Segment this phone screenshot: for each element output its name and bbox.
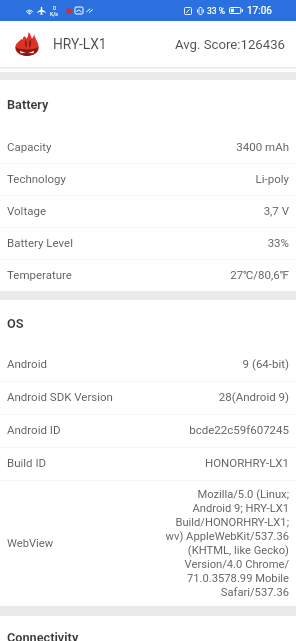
staticText: Temperature bbox=[7, 268, 72, 281]
staticText: Voltage bbox=[7, 204, 46, 217]
staticText: Battery Level bbox=[7, 236, 73, 249]
staticText: bcde22c59f607245 bbox=[189, 423, 289, 436]
staticText: Connectivity bbox=[7, 630, 79, 641]
button[interactable]: Battery Level bbox=[0, 227, 296, 259]
button[interactable]: Capacity bbox=[0, 131, 296, 163]
button[interactable]: Build ID bbox=[0, 447, 296, 480]
button[interactable]: Android SDK Version bbox=[0, 381, 296, 414]
button[interactable]: AnTuTu bbox=[15, 32, 39, 56]
staticText: Battery bbox=[7, 97, 49, 112]
staticText: Android bbox=[7, 357, 47, 370]
staticText: WebView bbox=[7, 537, 54, 550]
button[interactable]: Technology bbox=[0, 163, 296, 195]
staticText: Build ID bbox=[7, 456, 47, 469]
staticText: 28(Android 9) bbox=[218, 390, 289, 403]
staticText: HONORHRY-LX1 bbox=[205, 456, 289, 469]
staticText: Android ID bbox=[7, 423, 61, 436]
staticText: 33 % bbox=[207, 6, 225, 16]
button[interactable]: WebView bbox=[0, 480, 296, 606]
staticText: K/s bbox=[50, 11, 58, 17]
staticText: Mozilla/5.0 (Linux; Android 9; HRY-LX1 B… bbox=[161, 488, 289, 599]
button[interactable]: Android ID bbox=[0, 414, 296, 447]
staticText: 17:06 bbox=[247, 5, 272, 17]
staticText: Android SDK Version bbox=[7, 390, 113, 403]
staticText: 9 (64-bit) bbox=[242, 357, 289, 370]
staticText: 27℃/80,6℉ bbox=[230, 268, 289, 281]
staticText: 33% bbox=[267, 236, 289, 249]
staticText: Avg. Score:126436 bbox=[175, 37, 285, 52]
button[interactable]: Android bbox=[0, 348, 296, 381]
staticText: 3,7 V bbox=[263, 204, 289, 217]
staticText: 0 bbox=[53, 5, 56, 11]
staticText: Technology bbox=[7, 172, 66, 185]
staticText: Capacity bbox=[7, 140, 52, 153]
staticText: 3400 mAh bbox=[236, 140, 289, 153]
staticText: HRY-LX1 bbox=[53, 36, 107, 52]
button[interactable]: Temperature bbox=[0, 259, 296, 291]
button[interactable]: Voltage bbox=[0, 195, 296, 227]
staticText: OS bbox=[7, 316, 24, 331]
staticText: Li-poly bbox=[255, 172, 289, 185]
